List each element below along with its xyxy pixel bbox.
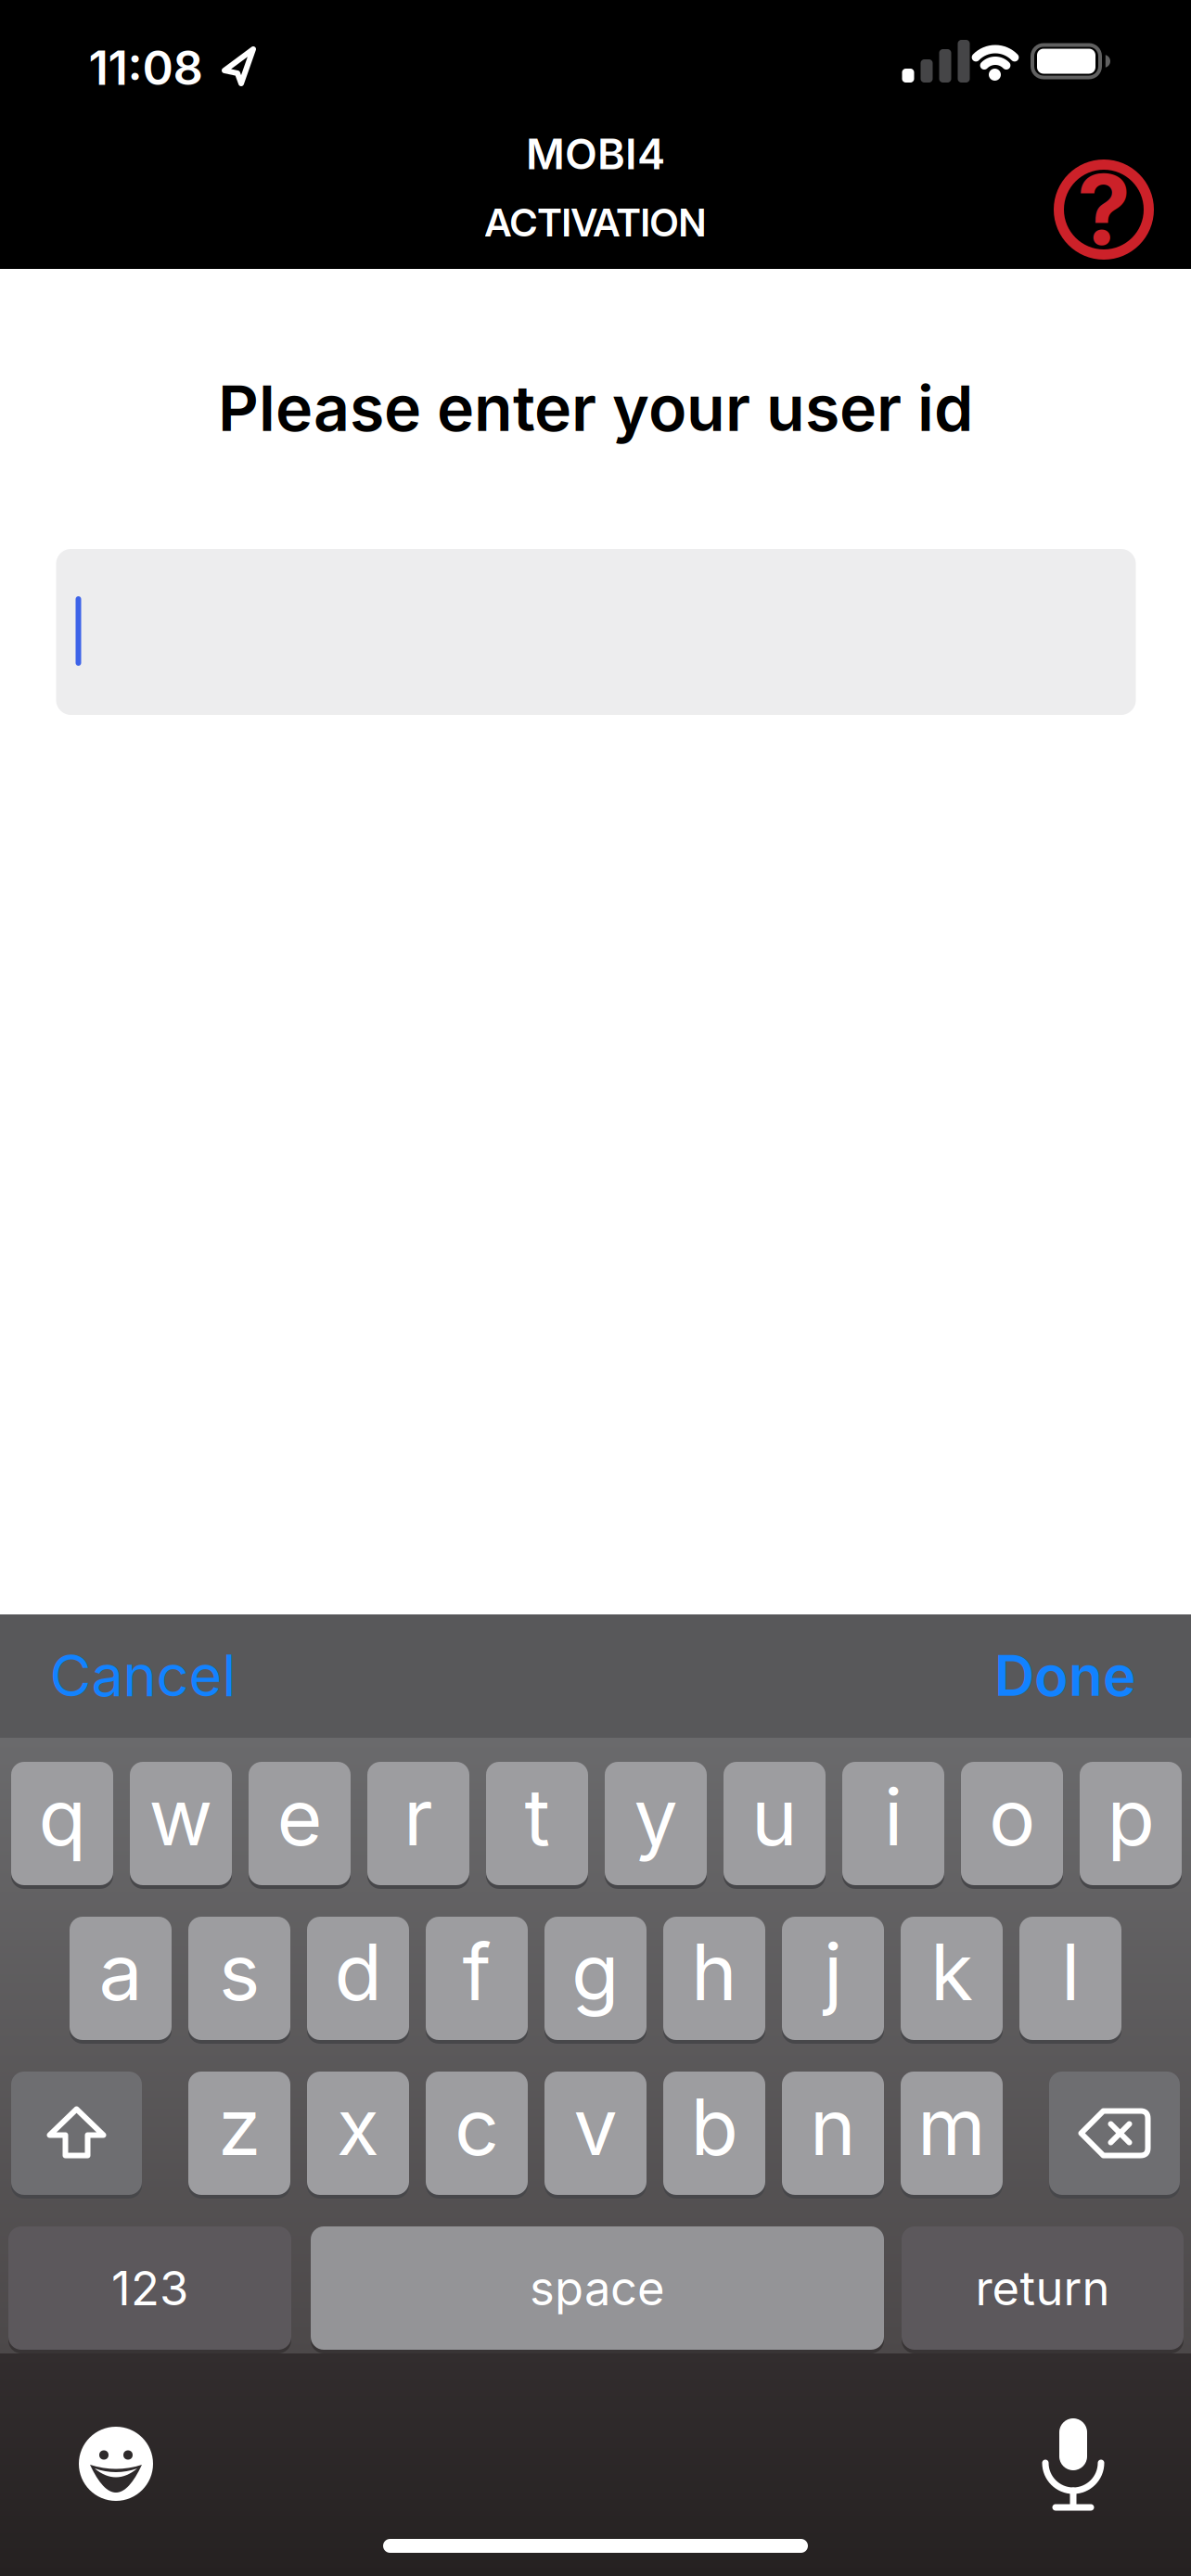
staticText: l	[1061, 1926, 1080, 2018]
button[interactable]: n	[782, 2070, 884, 2197]
button[interactable]: Emoji	[79, 2427, 153, 2501]
button[interactable]: i	[842, 1760, 944, 1887]
button[interactable]: Help	[1054, 159, 1154, 260]
staticText: n	[810, 2081, 856, 2173]
staticText: ?	[1077, 153, 1131, 267]
button[interactable]: k	[901, 1915, 1003, 2042]
staticText: Please enter your user id	[218, 371, 973, 445]
staticText: Cancel	[50, 1642, 236, 1709]
staticText: v	[574, 2081, 617, 2173]
button[interactable]: Shift	[11, 2070, 142, 2197]
button[interactable]: l	[1019, 1915, 1121, 2042]
button[interactable]: t	[486, 1760, 588, 1887]
button[interactable]: x	[307, 2070, 409, 2197]
button[interactable]: space	[311, 2225, 884, 2352]
staticText: s	[219, 1926, 260, 2018]
button[interactable]: h	[663, 1915, 765, 2042]
button[interactable]: return	[902, 2225, 1184, 2352]
staticText: h	[691, 1926, 737, 2018]
button[interactable]: Dictation	[1043, 2418, 1104, 2509]
staticText: b	[691, 2081, 738, 2173]
button[interactable]: Cancel	[50, 1642, 236, 1709]
staticText: e	[277, 1771, 322, 1863]
button[interactable]: b	[663, 2070, 765, 2197]
button[interactable]: w	[130, 1760, 232, 1887]
staticText: z	[218, 2081, 261, 2173]
staticText: return	[975, 2260, 1110, 2316]
button[interactable]: Delete	[1049, 2070, 1180, 2197]
staticText: j	[824, 1926, 842, 2018]
staticText: t	[525, 1771, 550, 1863]
button[interactable]: d	[307, 1915, 409, 2042]
staticText: i	[884, 1771, 903, 1863]
button[interactable]: e	[249, 1760, 351, 1887]
staticText: f	[462, 1926, 491, 2018]
button[interactable]: Done	[994, 1643, 1135, 1708]
staticText: m	[917, 2081, 986, 2173]
button[interactable]: m	[901, 2070, 1003, 2197]
staticText: k	[930, 1926, 973, 2018]
button[interactable]: a	[70, 1915, 172, 2042]
button[interactable]: u	[724, 1760, 826, 1887]
button[interactable]: v	[544, 2070, 647, 2197]
staticText: g	[571, 1926, 620, 2018]
staticText: d	[334, 1926, 382, 2018]
staticText: ACTIVATION	[485, 200, 706, 245]
button[interactable]: User id	[56, 549, 1136, 715]
button[interactable]: g	[544, 1915, 647, 2042]
staticText: r	[403, 1771, 433, 1863]
button[interactable]: j	[782, 1915, 884, 2042]
staticText: w	[149, 1771, 213, 1863]
button[interactable]: o	[961, 1760, 1063, 1887]
button[interactable]: p	[1080, 1760, 1182, 1887]
staticText: p	[1107, 1771, 1154, 1863]
staticText: 11:08	[89, 40, 203, 95]
staticText: Done	[994, 1643, 1135, 1708]
staticText: a	[99, 1926, 142, 2018]
button[interactable]: f	[426, 1915, 528, 2042]
button[interactable]: r	[367, 1760, 469, 1887]
staticText: y	[634, 1771, 678, 1863]
staticText: u	[751, 1771, 798, 1863]
button[interactable]: z	[188, 2070, 290, 2197]
button[interactable]: y	[605, 1760, 707, 1887]
button[interactable]: c	[426, 2070, 528, 2197]
staticText: 123	[111, 2260, 188, 2316]
staticText: space	[530, 2260, 665, 2316]
button[interactable]: s	[188, 1915, 290, 2042]
staticText: q	[38, 1771, 86, 1863]
button[interactable]: q	[11, 1760, 113, 1887]
staticText: o	[989, 1771, 1035, 1863]
staticText: MOBI4	[526, 129, 665, 179]
button[interactable]: Numbers	[8, 2225, 291, 2352]
staticText: x	[337, 2081, 379, 2173]
staticText: c	[455, 2081, 499, 2173]
